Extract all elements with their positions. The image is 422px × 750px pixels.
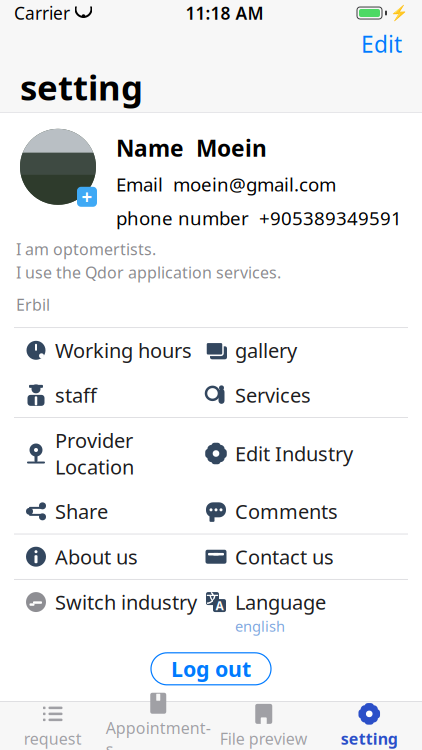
button[interactable]: 文 bbox=[205, 580, 385, 645]
button[interactable]: Edit Industry bbox=[205, 431, 385, 476]
staticText: 11:18 AM bbox=[185, 1, 263, 24]
staticText: english bbox=[235, 616, 285, 636]
button[interactable]: Provider Location bbox=[25, 418, 205, 489]
staticText: 文 bbox=[206, 591, 218, 606]
button[interactable]: File preview bbox=[211, 702, 316, 750]
button[interactable]: Share bbox=[25, 489, 205, 534]
staticText: Erbil bbox=[16, 294, 50, 315]
staticText: Switch industry bbox=[55, 589, 197, 615]
staticText: Log out bbox=[171, 655, 251, 683]
staticText: Email bbox=[116, 172, 163, 197]
button[interactable]: setting bbox=[316, 702, 422, 750]
staticText: Services bbox=[235, 382, 311, 408]
button[interactable]: request bbox=[0, 702, 105, 750]
staticText: phone number bbox=[116, 206, 249, 230]
button[interactable]: Log out bbox=[151, 653, 271, 685]
button[interactable]: gallery bbox=[205, 328, 385, 373]
staticText: I use the Qdor application services. bbox=[16, 262, 281, 283]
staticText: setting bbox=[20, 64, 143, 110]
button[interactable]: About us bbox=[25, 534, 205, 579]
staticText: ⚡ bbox=[390, 5, 408, 21]
button[interactable]: Switch industry bbox=[25, 580, 205, 624]
button[interactable]: staff bbox=[25, 373, 205, 417]
staticText: Comments bbox=[235, 498, 338, 525]
staticText: About us bbox=[55, 543, 138, 570]
staticText: I am optomertists. bbox=[16, 238, 156, 260]
staticText: A bbox=[215, 598, 223, 613]
staticText: Appointments bbox=[106, 717, 211, 750]
button[interactable]: Contact us bbox=[205, 534, 385, 579]
button[interactable]: Services bbox=[205, 373, 385, 417]
staticText: request bbox=[24, 728, 82, 749]
staticText: File preview bbox=[220, 728, 308, 749]
staticText: gallery bbox=[235, 337, 297, 364]
staticText: Moein bbox=[196, 133, 267, 163]
staticText: Working hours bbox=[55, 337, 192, 364]
staticText: Provider Location bbox=[55, 427, 134, 480]
staticText: + bbox=[81, 184, 92, 209]
staticText: Language bbox=[235, 589, 326, 615]
button[interactable]: Working hours bbox=[25, 328, 205, 373]
staticText: moein@gmail.com bbox=[173, 172, 336, 197]
staticText: Contact us bbox=[235, 543, 334, 570]
staticText: Edit bbox=[361, 29, 402, 59]
staticText: Share bbox=[55, 498, 108, 525]
staticText: Edit Industry bbox=[235, 440, 353, 467]
staticText: Carrier bbox=[14, 1, 70, 24]
button[interactable]: Comments bbox=[205, 489, 385, 534]
staticText: +905389349591 bbox=[259, 206, 402, 230]
button[interactable]: Edit bbox=[357, 25, 406, 63]
staticText: setting bbox=[341, 728, 398, 749]
staticText: staff bbox=[55, 382, 97, 408]
button[interactable]: Appointments bbox=[105, 702, 211, 750]
staticText: Name bbox=[116, 133, 184, 163]
